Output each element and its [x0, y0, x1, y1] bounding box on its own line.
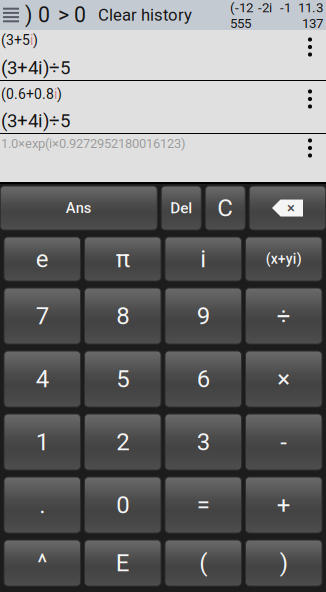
staticText: 6	[197, 365, 210, 393]
button[interactable]: (	[165, 540, 241, 586]
staticText: (-12	[230, 0, 253, 16]
button[interactable]: (x+yi)	[245, 237, 322, 281]
staticText: 7	[36, 302, 49, 330]
staticText: )	[33, 32, 38, 48]
staticText: 11.3	[298, 0, 323, 16]
staticText: -2i	[258, 0, 272, 16]
staticText: (x+yi)	[266, 251, 302, 267]
button[interactable]: +	[245, 477, 322, 533]
button[interactable]: 8	[84, 288, 161, 344]
staticText: ×	[287, 199, 295, 217]
button[interactable]: 0	[35, 0, 53, 30]
button[interactable]: ^	[4, 540, 80, 586]
button[interactable]: Del	[161, 186, 201, 230]
staticText: 8	[116, 302, 129, 330]
staticText: )	[57, 86, 62, 102]
staticText: -1	[280, 0, 291, 16]
button[interactable]: e	[4, 237, 80, 281]
button[interactable]: Entry options	[301, 86, 319, 112]
button[interactable]: Ans	[0, 186, 157, 230]
staticText: 0	[116, 491, 129, 519]
staticText: )	[25, 2, 32, 27]
button[interactable]: ÷	[245, 288, 322, 344]
button[interactable]: i	[165, 237, 241, 281]
button[interactable]: )	[245, 540, 322, 586]
staticText: i	[30, 32, 33, 48]
button[interactable]: > 0	[53, 0, 91, 30]
staticText: (3+4i)÷5	[1, 110, 70, 132]
button[interactable]: 1	[4, 414, 80, 470]
button[interactable]: 4	[4, 351, 80, 407]
button[interactable]: -	[245, 414, 322, 470]
staticText: 3	[197, 428, 210, 456]
staticText: 4	[36, 365, 49, 393]
staticText: 0	[38, 2, 50, 27]
button[interactable]: 9	[165, 288, 241, 344]
button[interactable]: 0	[84, 477, 161, 533]
staticText: (0.6+0.8	[1, 86, 54, 102]
button[interactable]: C	[205, 186, 245, 230]
staticText: (	[199, 549, 207, 577]
button[interactable]: =	[165, 477, 241, 533]
staticText: C	[217, 194, 233, 222]
button[interactable]: Backspace	[249, 186, 326, 230]
staticText: Del	[170, 199, 192, 217]
staticText: =	[197, 491, 210, 519]
staticText: -	[280, 428, 287, 456]
staticText: 137	[302, 16, 323, 31]
button[interactable]: π	[84, 237, 161, 281]
staticText: .	[39, 491, 45, 519]
staticText: Ans	[66, 199, 92, 217]
staticText: 9	[197, 302, 210, 330]
button[interactable]: Entry options	[301, 34, 319, 60]
staticText: (3+4i)÷5	[1, 57, 70, 79]
button[interactable]: 6	[165, 351, 241, 407]
button[interactable]: E	[84, 540, 161, 586]
button[interactable]: 2	[84, 414, 161, 470]
staticText: π	[116, 245, 130, 273]
staticText: ^	[37, 549, 47, 577]
staticText: e	[36, 245, 49, 273]
staticText: > 0	[58, 2, 86, 27]
button[interactable]: Clear history	[91, 0, 192, 30]
button[interactable]: 5	[84, 351, 161, 407]
button[interactable]: Menu	[0, 0, 22, 30]
button[interactable]: 3	[165, 414, 241, 470]
staticText: 1	[36, 428, 49, 456]
button[interactable]: ×	[245, 351, 322, 407]
button[interactable]: 7	[4, 288, 80, 344]
staticText: 5	[116, 365, 129, 393]
staticText: Clear history	[98, 5, 192, 25]
staticText: E	[116, 549, 130, 577]
staticText: ×	[277, 365, 290, 393]
staticText: +	[277, 491, 291, 519]
staticText: 2	[116, 428, 129, 456]
staticText: 1.0×exp(i×0.9272952180016123)	[1, 136, 186, 151]
staticText: )	[280, 549, 288, 577]
button[interactable]: )	[22, 0, 35, 30]
staticText: ÷	[277, 302, 291, 330]
staticText: 555	[230, 16, 251, 31]
staticText: i	[200, 245, 206, 273]
staticText: i	[54, 86, 57, 102]
button[interactable]: .	[4, 477, 80, 533]
button[interactable]: Entry options	[301, 135, 319, 161]
staticText: (3+5	[1, 32, 30, 48]
